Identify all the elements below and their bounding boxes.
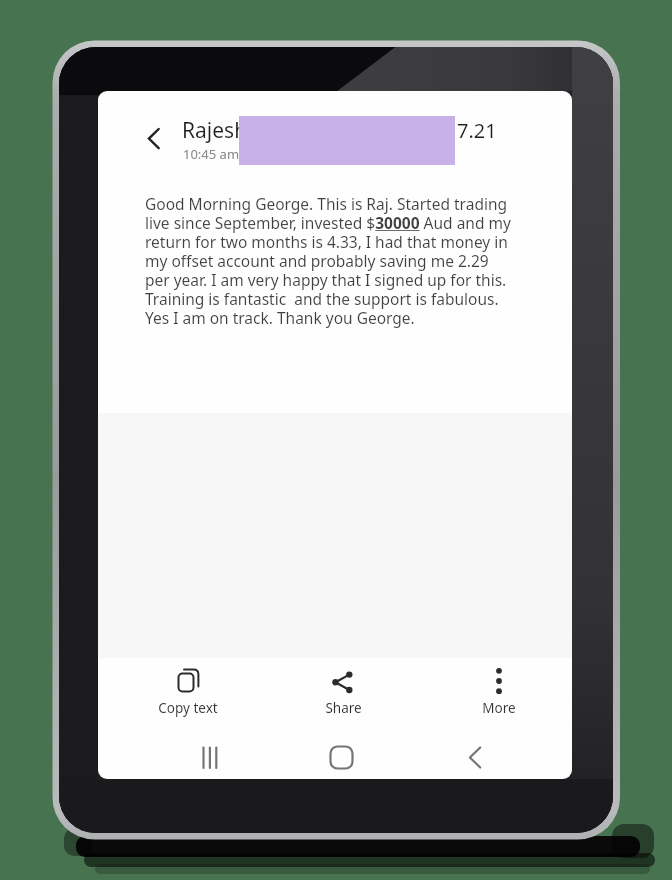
staticText: Share (325, 699, 362, 717)
button[interactable] (459, 664, 539, 718)
staticText: Rajesh (182, 116, 248, 145)
staticText: Good Morning George. This is Raj. Starte… (145, 193, 511, 329)
staticText: Copy text (158, 699, 218, 717)
button[interactable] (148, 664, 228, 718)
staticText: More (482, 699, 516, 717)
staticText: 7.21 (457, 117, 497, 144)
button[interactable] (175, 737, 245, 779)
button[interactable] (137, 122, 170, 155)
button[interactable] (303, 664, 383, 718)
staticText: 10:45 am (183, 145, 240, 163)
button[interactable] (441, 737, 511, 779)
button[interactable] (307, 737, 377, 779)
